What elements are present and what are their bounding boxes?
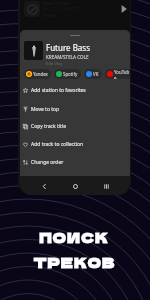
button[interactable]: Play xyxy=(118,3,130,15)
staticText: KREAM/STELA COLE xyxy=(46,54,89,60)
button[interactable]: Yandex xyxy=(24,69,51,79)
staticText: ПОИСК xyxy=(39,227,109,247)
button[interactable]: Spotify xyxy=(54,69,81,79)
staticText: Add station to favorites xyxy=(31,87,86,94)
button[interactable]: YouTube xyxy=(105,69,130,79)
staticText: Yandex xyxy=(33,71,48,77)
staticText: Move to top xyxy=(31,106,60,113)
button[interactable]: Copy track title xyxy=(20,118,130,135)
staticText: Spotify xyxy=(63,71,78,77)
staticText: Edit Vkq xyxy=(46,61,62,67)
button[interactable]: Recents xyxy=(99,179,113,193)
button[interactable]: Move to top xyxy=(20,101,130,118)
button[interactable]: Add track to collection xyxy=(20,136,130,153)
button[interactable]: Home xyxy=(68,179,82,193)
staticText: Copy track title xyxy=(31,123,66,130)
staticText: Future Bass xyxy=(46,42,91,53)
button[interactable]: Change order xyxy=(20,154,130,171)
button[interactable]: Add station to favorites xyxy=(20,82,130,99)
button[interactable]: VK xyxy=(84,69,102,79)
staticText: ТРЕКОВ xyxy=(33,252,116,272)
staticText: VK xyxy=(93,71,99,77)
button[interactable]: Back xyxy=(37,179,51,193)
staticText: Add track to collection xyxy=(31,141,84,148)
staticText: YouTube xyxy=(114,69,130,79)
staticText: Change order xyxy=(31,159,64,166)
